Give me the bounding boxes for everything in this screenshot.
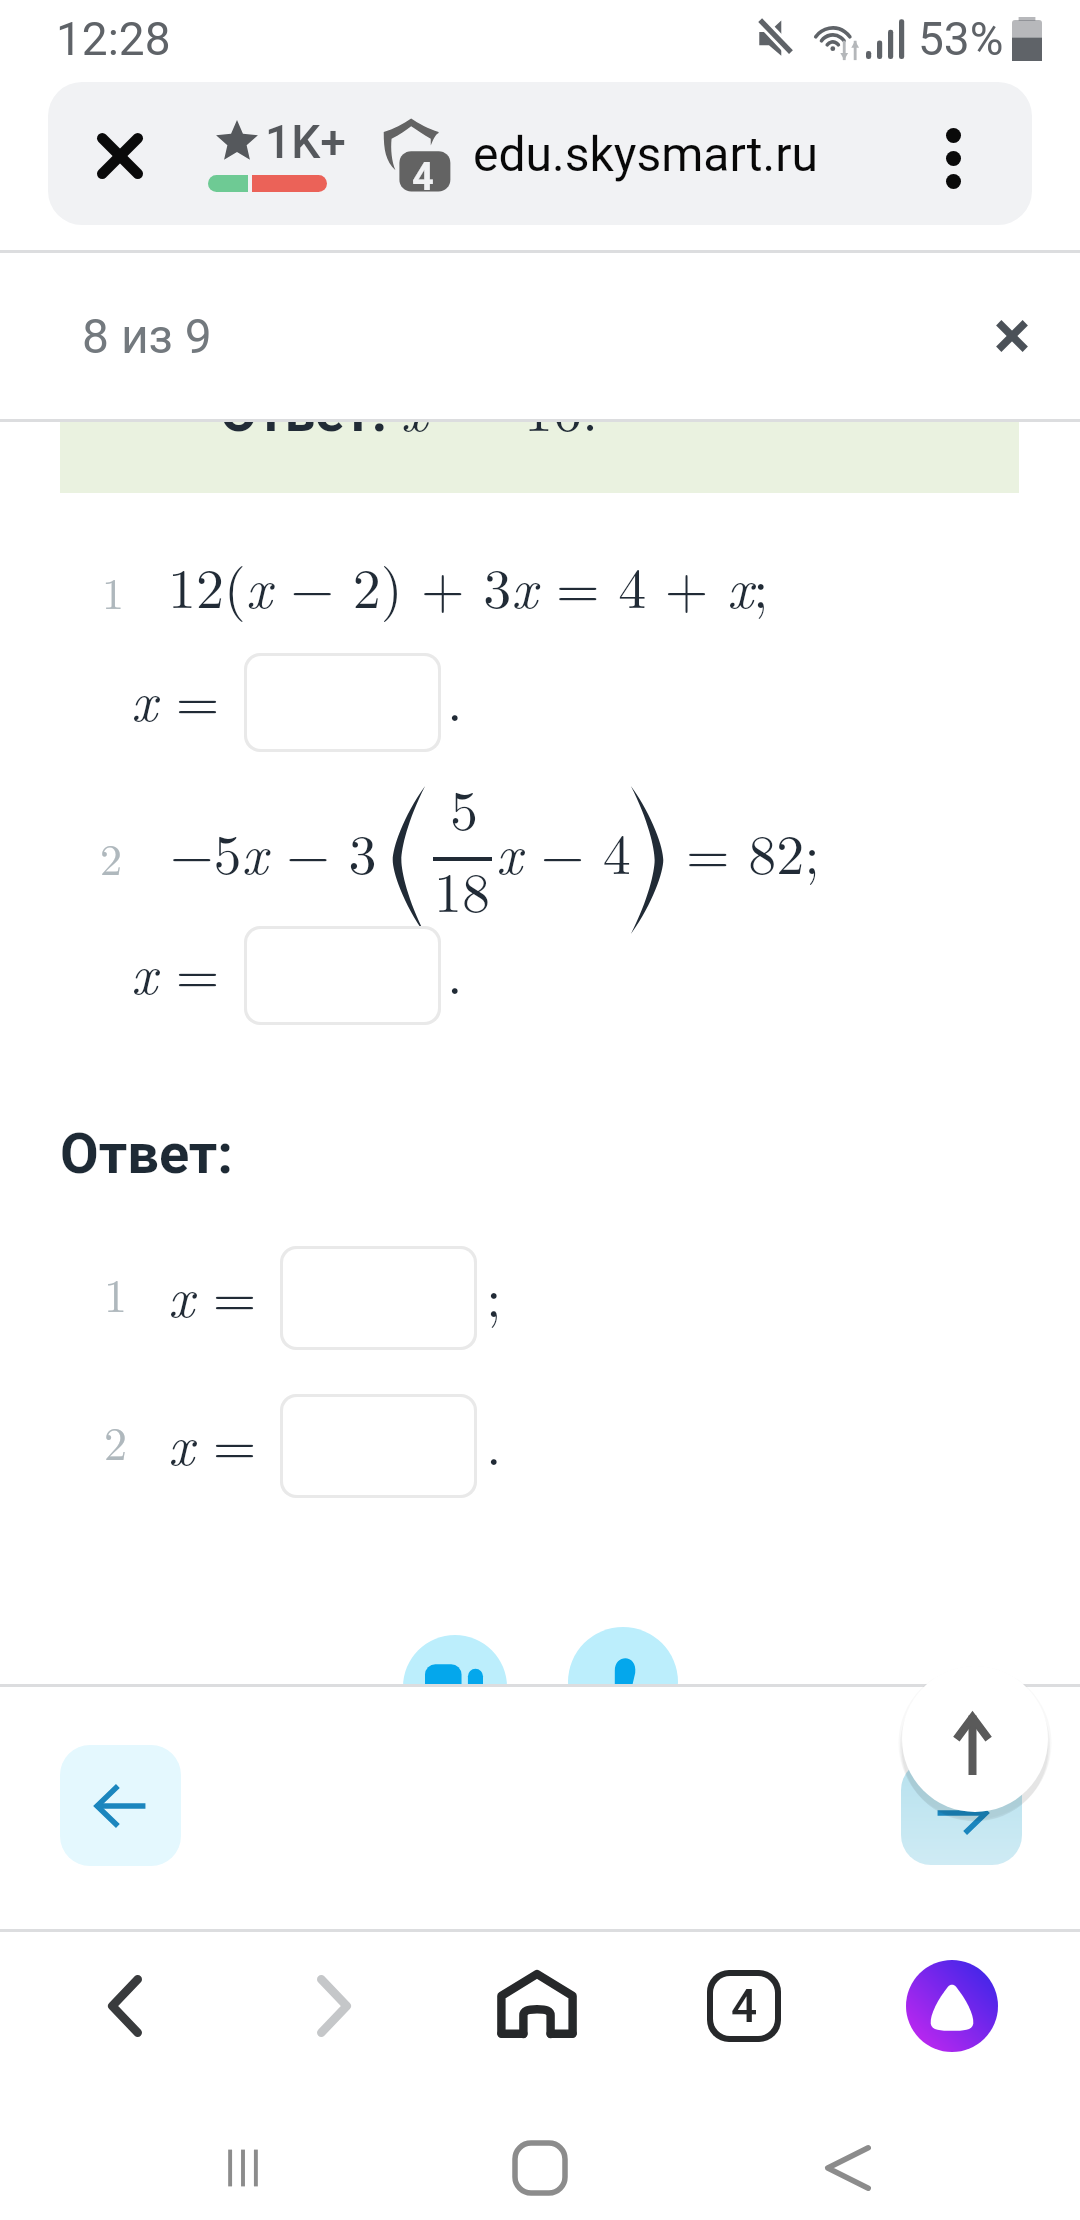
staticText: 2: [104, 1408, 127, 1473]
button[interactable]: Home: [482, 1951, 592, 2061]
staticText: 12:28: [56, 12, 171, 66]
staticText: .: [486, 1402, 502, 1481]
staticText: edu.skysmart.ru: [473, 126, 818, 182]
staticText: 8 из 9: [82, 308, 212, 364]
button[interactable]: Page rating: [208, 115, 344, 192]
staticText: Ответ:: [60, 1121, 234, 1187]
button[interactable]: Blocked trackers: [370, 107, 468, 203]
staticText: Ответ: x 16.: [220, 422, 599, 437]
button[interactable]: Close: [74, 110, 166, 202]
button[interactable]: Like: [568, 1627, 678, 1737]
button[interactable]: Home: [490, 2118, 590, 2218]
staticText: .: [447, 658, 463, 737]
button[interactable]: Back: [798, 2118, 898, 2218]
staticText: = 82;: [686, 811, 820, 890]
staticText: 1: [104, 1260, 127, 1325]
button[interactable]: Back: [70, 1951, 180, 2061]
button[interactable]: Previous task: [60, 1745, 181, 1866]
staticText: x =: [168, 1402, 257, 1481]
staticText: 4: [412, 155, 434, 200]
staticText: x =: [168, 1254, 257, 1333]
staticText: 53%: [918, 12, 1004, 66]
button[interactable]: More options: [903, 108, 1003, 208]
staticText: .: [447, 931, 463, 1010]
staticText: 1K+: [265, 115, 346, 169]
staticText: x − 4: [496, 811, 631, 890]
staticText: ;: [486, 1254, 502, 1333]
button[interactable]: Tabs: [689, 1951, 799, 2061]
button[interactable]: Recent apps: [193, 2118, 293, 2218]
staticText: 2: [100, 825, 122, 887]
staticText: 5: [450, 767, 478, 846]
button[interactable]: Close task: [964, 288, 1060, 384]
staticText: 18: [434, 849, 490, 928]
button[interactable]: Next task: [901, 1760, 1022, 1865]
staticText: 4: [731, 1979, 758, 2033]
staticText: x =: [131, 658, 220, 737]
staticText: x =: [131, 931, 220, 1010]
staticText: −5x − 3: [170, 811, 377, 890]
staticText: 12(x − 2) + 3x = 4 + x;: [168, 545, 769, 624]
button[interactable]: Scroll to top: [902, 1666, 1048, 1812]
button[interactable]: Forward: [279, 1951, 389, 2061]
staticText: 1: [102, 559, 124, 621]
button[interactable]: Alice assistant: [897, 1951, 1007, 2061]
button[interactable]: Dislike: [403, 1635, 507, 1739]
